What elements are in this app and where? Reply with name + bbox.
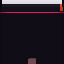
button[interactable]: App bar (2, 0, 62, 4)
